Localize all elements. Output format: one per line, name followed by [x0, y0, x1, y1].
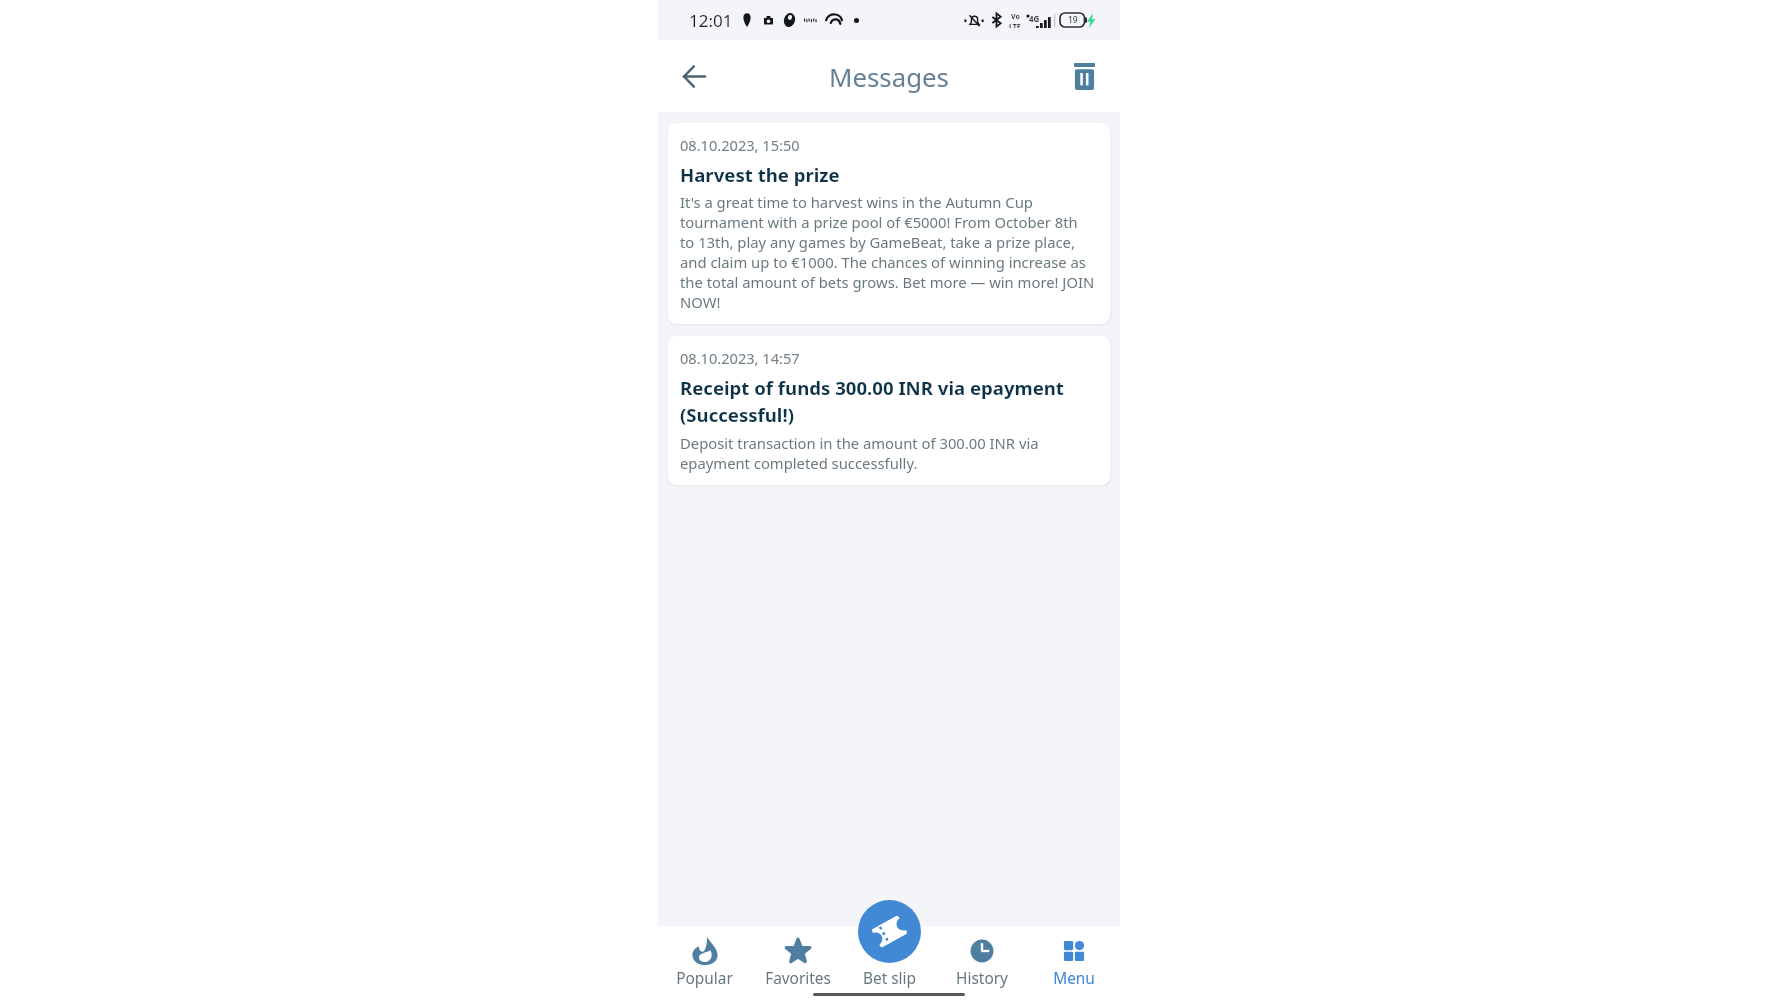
staticText: 12:01: [689, 9, 733, 32]
staticText: Bet slip: [863, 968, 917, 989]
staticText: History: [956, 968, 1008, 989]
staticText: Receipt of funds 300.00 INR via epayment…: [680, 375, 1095, 428]
button[interactable]: Favorites: [751, 926, 844, 1000]
button[interactable]: History: [936, 926, 1028, 1000]
button[interactable]: Menu: [1028, 926, 1120, 1000]
staticText: It's a great time to harvest wins in the…: [680, 192, 1095, 312]
staticText: Menu: [1053, 968, 1095, 989]
staticText: 08.10.2023, 15:50: [680, 135, 800, 155]
staticText: Vo: [1011, 12, 1020, 22]
button[interactable]: Bet slip: [844, 926, 936, 1000]
staticText: Popular: [676, 968, 733, 989]
staticText: 08.10.2023, 14:57: [680, 348, 800, 368]
staticText: Favorites: [765, 968, 831, 989]
staticText: LTE: [1009, 22, 1021, 28]
button[interactable]: 08.10.2023, 15:50: [668, 123, 1110, 324]
button[interactable]: Delete all messages: [1064, 56, 1104, 96]
staticText: 4G: [1029, 13, 1040, 24]
staticText: Messages: [829, 59, 949, 94]
staticText: Deposit transaction in the amount of 300…: [680, 433, 1095, 473]
button[interactable]: Bet slip: [858, 900, 921, 963]
button[interactable]: Popular: [658, 926, 751, 1000]
staticText: 19: [1068, 14, 1078, 26]
button[interactable]: 08.10.2023, 14:57: [668, 336, 1110, 485]
staticText: Harvest the prize: [680, 162, 840, 187]
button[interactable]: Back: [674, 56, 714, 96]
